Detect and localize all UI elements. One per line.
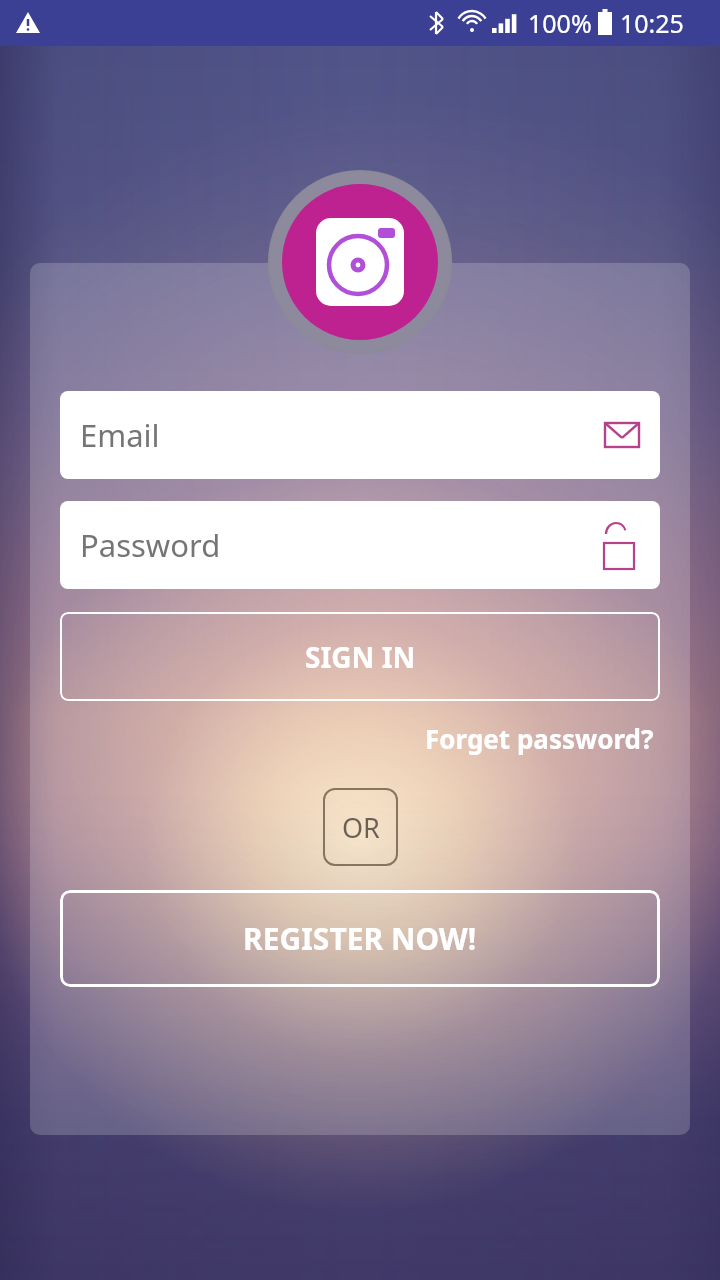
staticText: SIGN IN [305,638,416,676]
staticText: Password [80,524,221,566]
button[interactable]: Forget password? [419,715,660,762]
staticText: Forget password? [425,721,654,756]
staticText: REGISTER NOW! [243,918,477,959]
staticText: 10:25 [620,6,706,40]
staticText: 100% [528,6,592,40]
button[interactable]: Email [60,391,660,479]
staticText: Email [80,414,160,456]
button[interactable]: REGISTER NOW! [60,890,660,987]
button[interactable]: Password [60,501,660,589]
staticText: OR [342,809,380,846]
button[interactable]: SIGN IN [60,612,660,701]
